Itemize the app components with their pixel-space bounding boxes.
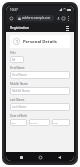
button[interactable]: Year bbox=[52, 119, 70, 126]
button[interactable]: Last Name bbox=[10, 103, 70, 111]
staticText: First Name bbox=[12, 73, 27, 77]
staticText: webform.example.com bbox=[22, 16, 51, 20]
staticText: Date of Birth bbox=[10, 114, 28, 118]
button[interactable]: Home bbox=[36, 153, 44, 161]
staticText: 10:37 bbox=[10, 8, 18, 12]
staticText: Middle Name bbox=[12, 89, 31, 93]
staticText: 1 bbox=[16, 39, 18, 44]
staticText: Day bbox=[11, 121, 16, 124]
button[interactable]: Voice search bbox=[56, 16, 61, 21]
button[interactable]: Reload bbox=[9, 16, 14, 21]
button[interactable]: Mr bbox=[10, 56, 24, 63]
button[interactable]: First Name bbox=[10, 71, 70, 79]
button[interactable]: Menu bbox=[64, 25, 70, 31]
staticText: First Name bbox=[10, 66, 25, 70]
button[interactable]: Month bbox=[29, 119, 50, 126]
staticText: Title bbox=[10, 51, 16, 55]
staticText: Last Name bbox=[12, 105, 27, 109]
button[interactable]: More options bbox=[66, 16, 71, 21]
staticText: Last Name bbox=[10, 98, 25, 102]
button[interactable]: Middle Name bbox=[10, 87, 70, 95]
staticText: Personal Details bbox=[23, 39, 57, 45]
button[interactable]: Day bbox=[10, 119, 27, 126]
button[interactable]: webform.example.com bbox=[16, 15, 54, 21]
staticText: Month bbox=[30, 121, 38, 124]
staticText: Middle Name bbox=[10, 82, 28, 86]
button[interactable]: Recent apps bbox=[17, 153, 25, 161]
staticText: Year bbox=[53, 121, 59, 124]
button[interactable]: Back bbox=[55, 153, 63, 161]
staticText: Mr bbox=[12, 58, 16, 62]
button[interactable]: Tabs bbox=[61, 16, 66, 21]
button[interactable]: 1 bbox=[10, 35, 70, 48]
staticText: Registration bbox=[10, 26, 64, 30]
